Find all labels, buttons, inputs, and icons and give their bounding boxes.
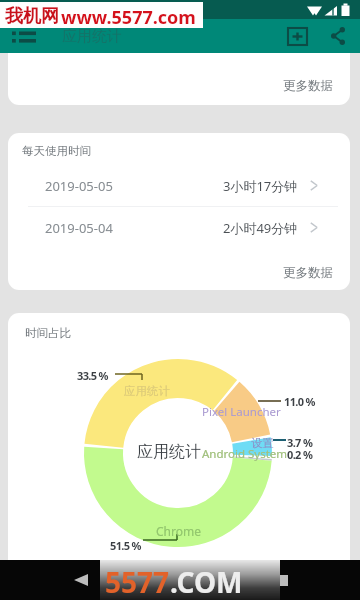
staticText: 2019-05-05 xyxy=(45,177,113,195)
staticText: 51.5 % xyxy=(110,538,141,553)
staticText: 33.5 % xyxy=(77,368,108,383)
staticText: 应用统计 xyxy=(62,27,122,46)
staticText: 0.2 % xyxy=(287,447,313,462)
staticText: Chrome xyxy=(156,523,201,539)
staticText: 3小时17分钟 xyxy=(223,177,298,195)
button[interactable]: Back xyxy=(66,565,96,595)
button[interactable]: Home xyxy=(165,565,195,595)
staticText: 每天使用时间 xyxy=(22,144,91,158)
staticText: 更多数据 xyxy=(283,265,333,281)
staticText: 2019-05-04 xyxy=(45,219,113,237)
button[interactable]: Recents xyxy=(267,565,297,595)
staticText: www.5577.com xyxy=(61,5,196,30)
button[interactable]: 2019-05-05 xyxy=(8,165,350,206)
staticText: 3.7 % xyxy=(287,435,313,450)
staticText: 设置 xyxy=(251,436,274,450)
button[interactable]: Share xyxy=(323,21,353,51)
button[interactable]: 2019-05-04 xyxy=(8,207,350,248)
staticText: Android System xyxy=(202,446,288,462)
staticText: .COM xyxy=(170,563,243,600)
staticText: 更多数据 xyxy=(283,78,333,94)
staticText: 2小时49分钟 xyxy=(223,219,298,237)
staticText: 11.0 % xyxy=(284,394,315,409)
button[interactable]: Menu xyxy=(8,20,40,52)
staticText: 时间占比 xyxy=(25,326,71,340)
button[interactable]: 更多数据 xyxy=(8,53,350,105)
button[interactable]: Add xyxy=(281,21,313,51)
staticText: 5577 xyxy=(105,563,170,600)
staticText: Pixel Launcher xyxy=(202,404,281,420)
staticText: 我机网 xyxy=(5,5,59,28)
staticText: 应用统计 xyxy=(137,442,201,462)
staticText: 应用统计 xyxy=(124,384,170,398)
